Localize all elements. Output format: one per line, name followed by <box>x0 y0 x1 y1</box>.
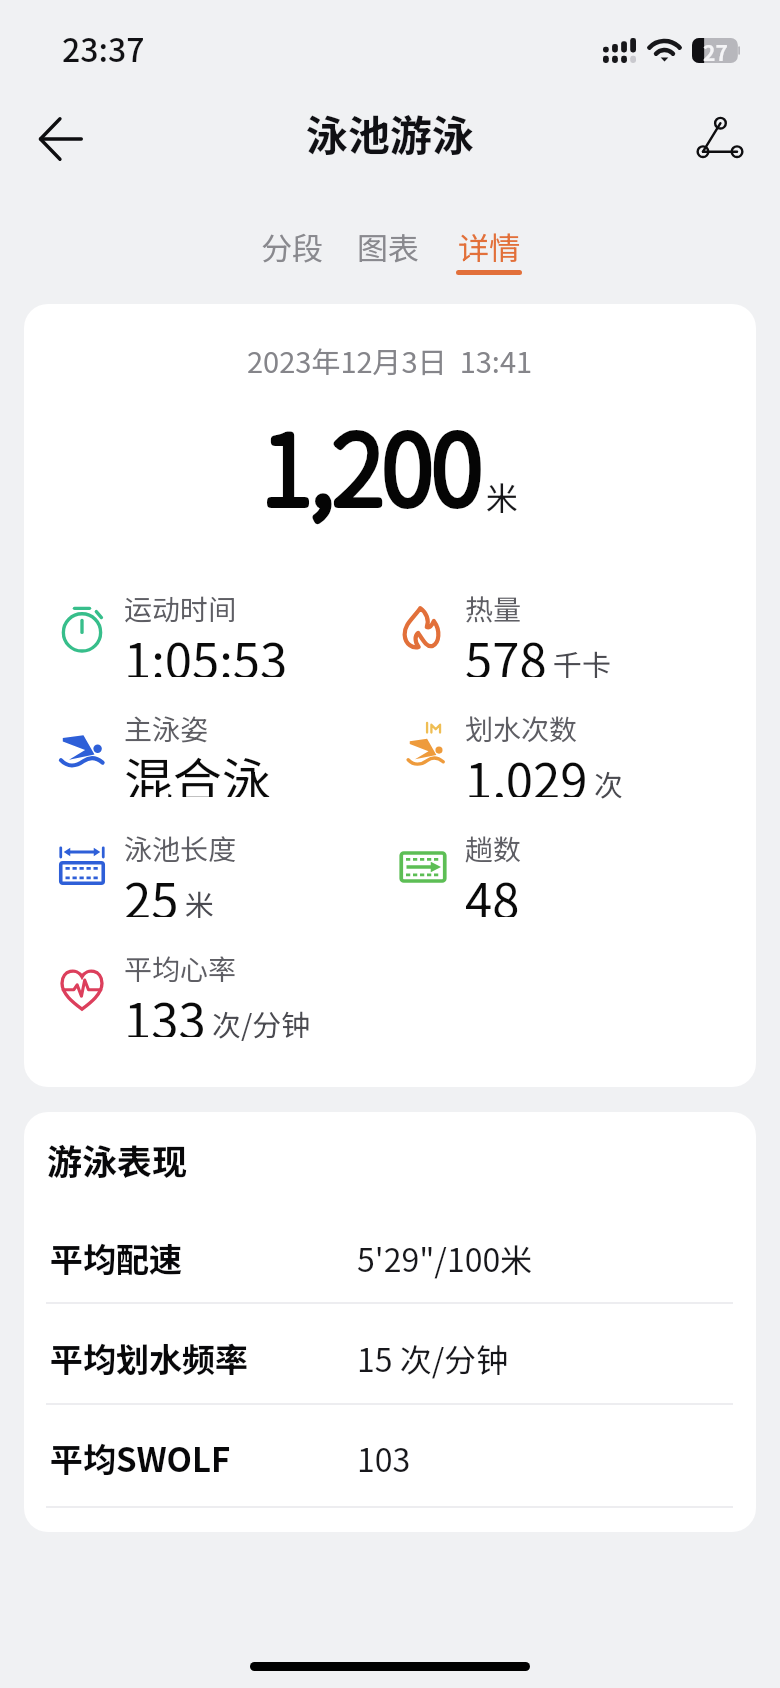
staticText: 15 次/分钟 <box>357 1335 509 1381</box>
staticText: 25 <box>124 862 179 917</box>
staticText: 分段 <box>261 224 323 269</box>
staticText: 主泳姿 <box>124 708 209 749</box>
button[interactable]: 详情 <box>456 224 522 275</box>
staticText: 平均配速 <box>50 1234 182 1282</box>
staticText: 米 <box>486 473 519 519</box>
staticText: 27 <box>703 37 728 62</box>
staticText: 2023年12月3日 13:41 <box>247 339 533 381</box>
staticText: 划水次数 <box>465 708 578 749</box>
staticText: 平均心率 <box>124 948 237 989</box>
staticText: 578 <box>465 622 547 677</box>
staticText: 103 <box>357 1435 411 1481</box>
staticText: 趟数 <box>465 828 522 869</box>
staticText: 次/分钟 <box>212 1002 311 1044</box>
staticText: 泳池长度 <box>124 828 237 869</box>
button[interactable]: 平均配速 <box>24 1198 756 1298</box>
staticText: 1,029 <box>465 742 588 797</box>
staticText: 23:37 <box>62 25 145 71</box>
staticText: 热量 <box>465 588 522 629</box>
staticText: 次 <box>594 762 624 804</box>
button[interactable]: 平均SWOLF <box>24 1398 756 1498</box>
staticText: 133 <box>124 982 206 1037</box>
staticText: 5'29"/100米 <box>357 1235 533 1281</box>
staticText: 泳池游泳 <box>306 102 475 163</box>
button[interactable]: 图表 <box>355 224 421 275</box>
staticText: 米 <box>185 882 215 924</box>
staticText: 1:05:53 <box>124 622 288 677</box>
staticText: 混合泳 <box>124 742 272 797</box>
staticText: 详情 <box>458 224 520 269</box>
button[interactable]: 平均划水频率 <box>24 1298 756 1398</box>
staticText: 平均SWOLF <box>50 1434 231 1482</box>
button[interactable]: Back <box>24 103 96 175</box>
staticText: 1,200 <box>262 394 482 532</box>
staticText: 平均划水频率 <box>50 1334 248 1382</box>
button[interactable]: Share <box>684 104 756 176</box>
staticText: 游泳表现 <box>47 1134 188 1185</box>
button[interactable]: 分段 <box>259 224 325 275</box>
staticText: 千卡 <box>553 642 612 684</box>
staticText: 48 <box>465 862 520 917</box>
staticText: 运动时间 <box>124 588 237 629</box>
staticText: 1,200 <box>262 394 482 532</box>
staticText: 图表 <box>357 224 419 269</box>
